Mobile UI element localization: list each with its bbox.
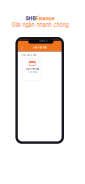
staticText: Finance: [35, 15, 54, 21]
button[interactable]: Vay tiền mặt: [23, 59, 42, 81]
staticText: ‹: [21, 45, 23, 50]
staticText: tiêu dùng: [28, 71, 37, 73]
staticText: Vay tiền mặt: [33, 46, 47, 49]
staticText: SHB: [25, 15, 35, 21]
staticText: Chọn sản phẩm: [21, 53, 37, 56]
staticText: Giải ngân nhanh chóng: [11, 22, 68, 28]
staticText: Vay tiền mặt: [25, 67, 39, 71]
button[interactable]: Back: [20, 45, 24, 50]
